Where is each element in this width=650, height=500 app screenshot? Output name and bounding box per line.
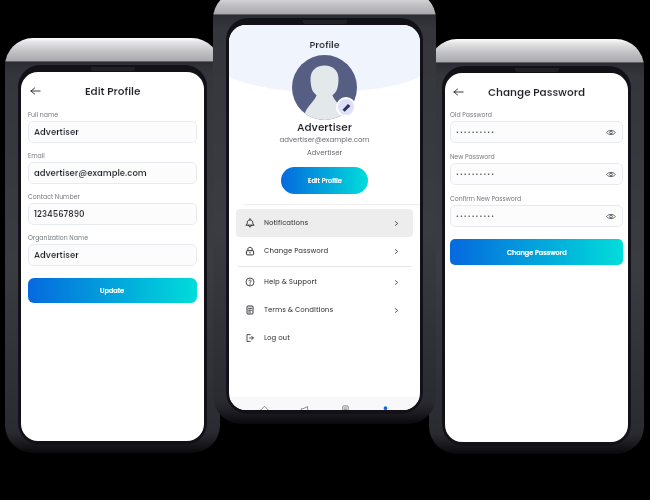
staticText: Advertiser — [34, 126, 79, 138]
staticText: Log out — [264, 333, 290, 343]
button[interactable]: Edit photo — [336, 97, 356, 117]
staticText: Terms & Conditions — [264, 305, 334, 315]
staticText: Contact Number — [28, 192, 80, 201]
staticText: advertiser@example.com — [34, 167, 147, 179]
button[interactable]: Change Password — [236, 237, 413, 265]
staticText: Change Password — [488, 85, 586, 100]
button[interactable]: Log out — [236, 324, 413, 352]
staticText: Update — [100, 286, 125, 295]
button[interactable]: • • • • • • • • • • — [450, 205, 623, 227]
staticText: advertiser@example.com — [229, 135, 420, 145]
staticText: Change Password — [507, 248, 567, 257]
button[interactable]: • • • • • • • • • • — [450, 121, 623, 143]
staticText: Edit Profile — [85, 84, 141, 99]
staticText: • • • • • • • • • • — [456, 170, 495, 178]
staticText: Change Password — [264, 246, 329, 256]
button[interactable]: Edit Profile — [281, 167, 368, 194]
button[interactable]: Advertiser — [28, 244, 197, 266]
button[interactable]: Show password — [604, 168, 617, 181]
button[interactable]: Show password — [604, 126, 617, 139]
staticText: • • • • • • • • • • — [456, 128, 495, 136]
button[interactable]: Home — [258, 403, 270, 410]
staticText: 1234567890 — [34, 208, 85, 220]
staticText: Help & Support — [264, 277, 317, 287]
button[interactable]: Notifications — [236, 209, 413, 237]
button[interactable]: Profile — [379, 403, 391, 410]
button[interactable]: Terms & Conditions — [236, 296, 413, 324]
button[interactable]: Help & Support — [236, 268, 413, 296]
button[interactable]: Advertiser — [28, 121, 197, 143]
staticText: Old Password — [450, 110, 492, 119]
button[interactable]: Back — [449, 83, 467, 101]
staticText: • • • • • • • • • • — [456, 212, 495, 220]
button[interactable]: Update — [28, 278, 197, 303]
button[interactable]: Change Password — [450, 239, 623, 265]
staticText: Notifications — [264, 218, 309, 228]
staticText: Email — [28, 151, 45, 160]
staticText: Advertiser — [229, 120, 420, 133]
staticText: Profile — [229, 38, 420, 51]
staticText: Edit Profile — [308, 176, 342, 185]
button[interactable]: • • • • • • • • • • — [450, 163, 623, 185]
button[interactable]: Back — [26, 82, 44, 100]
button[interactable]: Ads — [298, 403, 310, 410]
button[interactable]: Reports — [339, 403, 351, 410]
staticText: New Password — [450, 152, 495, 161]
staticText: Full name — [28, 110, 59, 119]
button[interactable]: advertiser@example.com — [28, 162, 197, 184]
button[interactable]: 1234567890 — [28, 203, 197, 225]
staticText: Organization Name — [28, 233, 89, 242]
staticText: Advertiser — [229, 148, 420, 158]
button[interactable]: Show password — [604, 210, 617, 223]
staticText: Advertiser — [34, 249, 79, 261]
staticText: Confirm New Password — [450, 194, 522, 203]
